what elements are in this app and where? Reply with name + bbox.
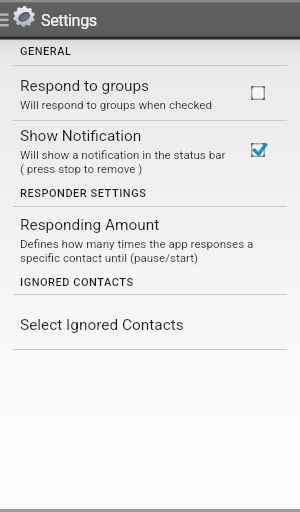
staticText: Show Notification bbox=[20, 127, 142, 145]
staticText: Respond to groups bbox=[20, 77, 150, 95]
button[interactable]: Select Ignored Contacts bbox=[0, 295, 300, 349]
button[interactable]: Show Notification bbox=[0, 121, 300, 179]
button[interactable]: Navigate up bbox=[0, 0, 13, 38]
staticText: GENERAL bbox=[20, 45, 72, 58]
button[interactable]: Responding Amount bbox=[0, 207, 300, 268]
staticText: RESPONDER SETTINGS bbox=[20, 187, 147, 200]
staticText: specific contact until (pause/start) bbox=[20, 251, 199, 265]
button[interactable]: Unchecked bbox=[234, 69, 282, 117]
staticText: Will show a notification in the status b… bbox=[20, 148, 226, 162]
button[interactable]: Respond to groups bbox=[0, 66, 300, 120]
button[interactable]: Checked bbox=[234, 126, 282, 174]
staticText: Responding Amount bbox=[20, 216, 160, 234]
staticText: IGNORED CONTACTS bbox=[20, 276, 134, 289]
staticText: ( press stop to remove ) bbox=[20, 162, 143, 176]
staticText: Select Ignored Contacts bbox=[20, 316, 184, 334]
staticText: Will respond to groups when checked bbox=[20, 98, 213, 112]
staticText: Defines how many times the app responses… bbox=[20, 237, 254, 251]
staticText: Settings bbox=[41, 11, 97, 30]
